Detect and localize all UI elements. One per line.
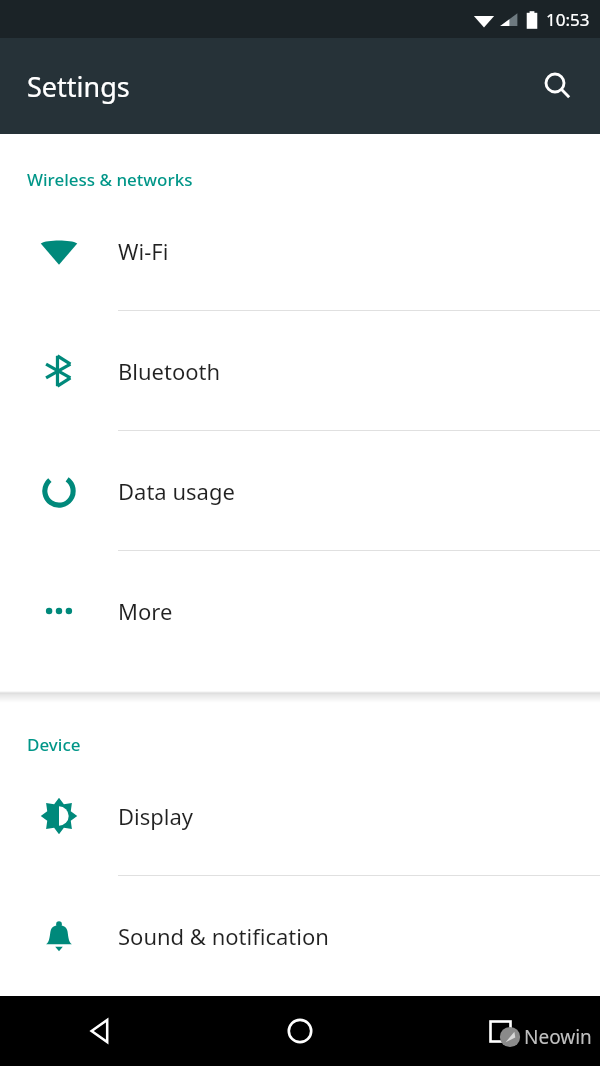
button[interactable]: Bluetooth [0, 311, 600, 431]
button[interactable]: Back [0, 996, 200, 1066]
button[interactable]: Wi-Fi [0, 191, 600, 311]
staticText: Settings [27, 68, 130, 105]
staticText: Bluetooth [118, 356, 221, 386]
button[interactable]: Home [200, 996, 400, 1066]
staticText: More [118, 596, 173, 626]
button[interactable]: Recent apps [400, 996, 600, 1066]
staticText: Data usage [118, 476, 235, 506]
staticText: Sound & notification [118, 921, 329, 951]
staticText: Device [27, 733, 81, 756]
button[interactable]: Search [532, 60, 584, 112]
button[interactable]: Data usage [0, 431, 600, 551]
button[interactable]: Sound & notification [0, 876, 600, 996]
button[interactable]: More [0, 551, 600, 671]
staticText: 10:53 [546, 8, 590, 31]
staticText: Display [118, 801, 194, 831]
staticText: Neowin [524, 1024, 592, 1050]
button[interactable]: Display [0, 756, 600, 876]
staticText: Wireless & networks [27, 168, 193, 191]
staticText: Wi-Fi [118, 236, 169, 266]
